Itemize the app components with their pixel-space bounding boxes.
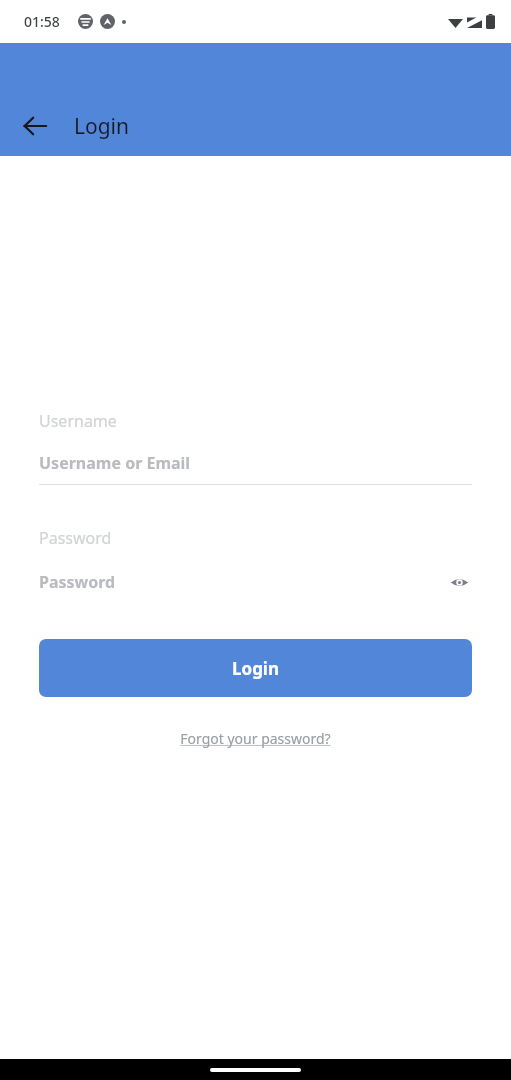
staticText: 01:58 [24, 12, 60, 31]
button[interactable]: Forgot your password? [180, 729, 331, 748]
staticText: Login [74, 112, 130, 141]
button[interactable]: Password [39, 569, 472, 595]
button[interactable]: Username or Email [39, 452, 472, 474]
staticText: Login [232, 657, 280, 680]
staticText: Password [39, 571, 116, 593]
button[interactable]: Login [39, 639, 472, 697]
button[interactable]: Show password [446, 569, 472, 595]
staticText: Username [39, 410, 117, 432]
staticText: Username or Email [39, 452, 191, 474]
staticText: Forgot your password? [180, 729, 331, 748]
staticText: Password [39, 527, 112, 549]
button[interactable]: Back [19, 110, 51, 142]
